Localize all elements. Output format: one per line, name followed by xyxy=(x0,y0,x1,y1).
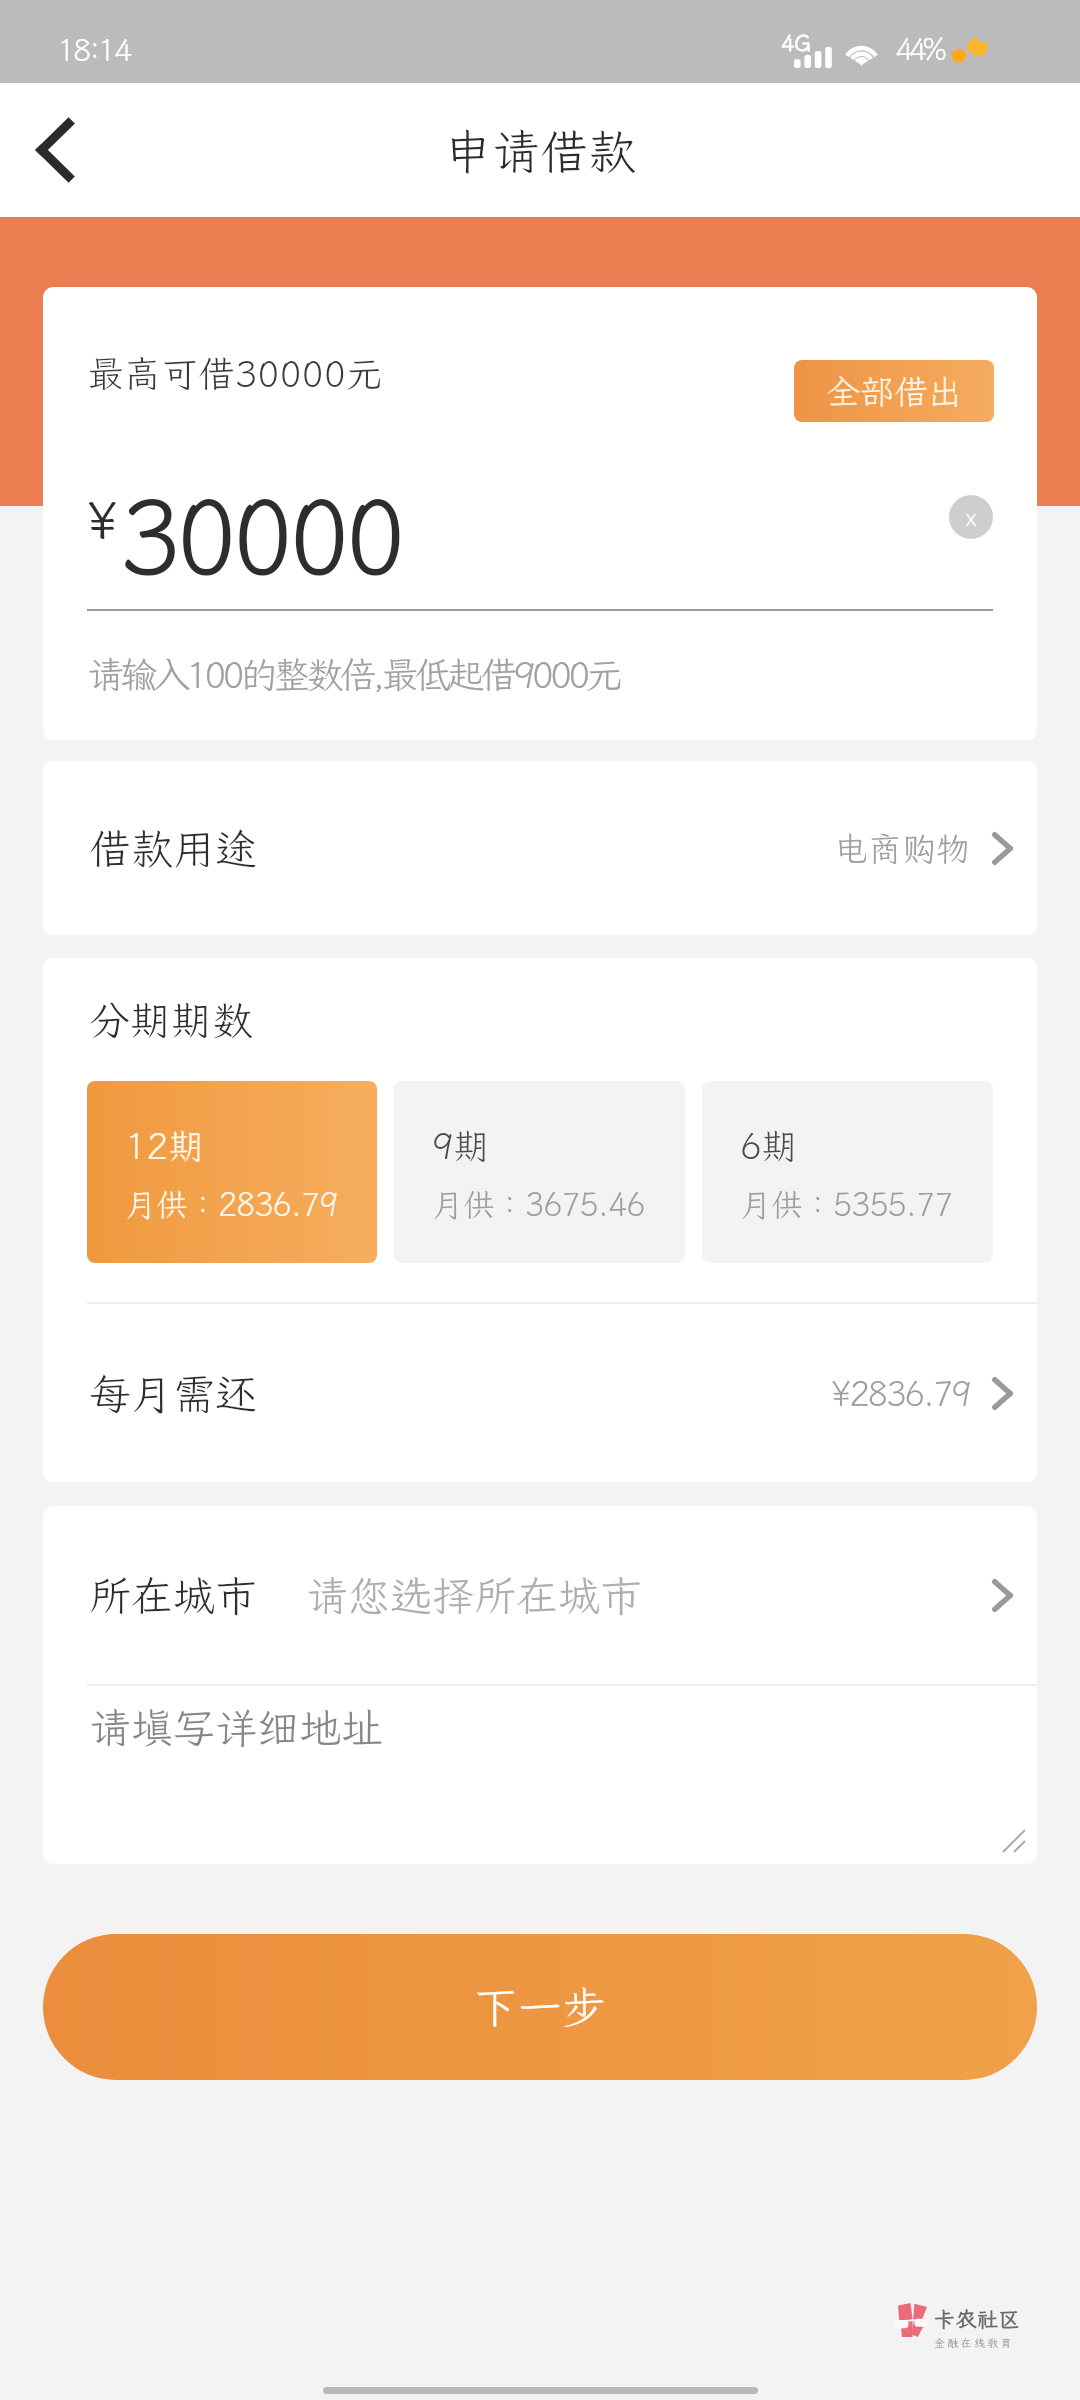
staticText: 卡农社区 xyxy=(934,2305,1020,2333)
button[interactable]: Back xyxy=(0,95,110,205)
staticText: x xyxy=(965,501,977,533)
staticText: 申请借款 xyxy=(444,119,637,182)
staticText: 30000 xyxy=(119,467,402,604)
staticText: 每月需还 xyxy=(89,1366,258,1421)
staticText: 月供：3675.46 xyxy=(432,1183,645,1225)
staticText: 所在城市 xyxy=(89,1568,258,1623)
staticText: 9期 xyxy=(432,1122,490,1169)
button[interactable]: 借款用途 xyxy=(43,761,1037,935)
staticText: 4G xyxy=(781,28,811,57)
button[interactable]: 每月需还 xyxy=(43,1304,1037,1482)
staticText: 请输入100的整数倍,最低起借9000元 xyxy=(87,650,620,699)
staticText: 分期期数 xyxy=(89,993,253,1047)
button[interactable]: 9期 xyxy=(394,1081,685,1263)
staticText: 12期 xyxy=(125,1122,205,1169)
staticText: 最高可借30000元 xyxy=(87,349,383,398)
staticText: 金融在线教育 xyxy=(934,2336,1014,2350)
button[interactable]: 12期 xyxy=(87,1081,377,1263)
staticText: 全部借出 xyxy=(826,369,962,414)
button[interactable]: Clear xyxy=(949,495,993,539)
staticText: 借款用途 xyxy=(89,821,258,876)
staticText: 月供：2836.79 xyxy=(125,1183,338,1225)
staticText: 电商购物 xyxy=(834,826,970,871)
button[interactable]: 下一步 xyxy=(43,1934,1037,2080)
staticText: 6期 xyxy=(740,1122,798,1169)
staticText: 44% xyxy=(895,28,942,69)
button[interactable]: 6期 xyxy=(702,1081,993,1263)
button[interactable]: 所在城市 xyxy=(43,1506,1037,1684)
staticText: 请您选择所在城市 xyxy=(306,1568,643,1623)
staticText: ¥ xyxy=(87,484,119,552)
staticText: ¥2836.79 xyxy=(831,1371,970,1416)
staticText: 下一步 xyxy=(474,1978,606,2036)
staticText: 请填写详细地址 xyxy=(89,1700,384,1755)
button[interactable]: 全部借出 xyxy=(794,360,994,422)
staticText: 18:14 xyxy=(57,29,130,70)
staticText: 月供：5355.77 xyxy=(740,1183,953,1225)
